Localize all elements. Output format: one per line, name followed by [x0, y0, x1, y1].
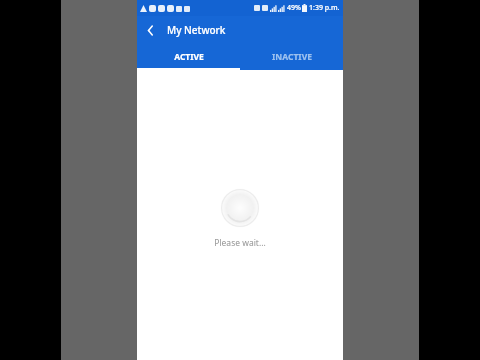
- button[interactable]: ACTIVE: [137, 44, 240, 70]
- staticText: ACTIVE: [174, 51, 204, 63]
- button[interactable]: INACTIVE: [240, 44, 343, 70]
- staticText: 49%: [287, 3, 301, 13]
- button[interactable]: Back: [137, 17, 163, 43]
- staticText: INACTIVE: [272, 51, 312, 63]
- staticText: Please wait...: [214, 237, 266, 249]
- staticText: My Network: [167, 23, 226, 37]
- staticText: 1:39 p.m.: [309, 3, 340, 13]
